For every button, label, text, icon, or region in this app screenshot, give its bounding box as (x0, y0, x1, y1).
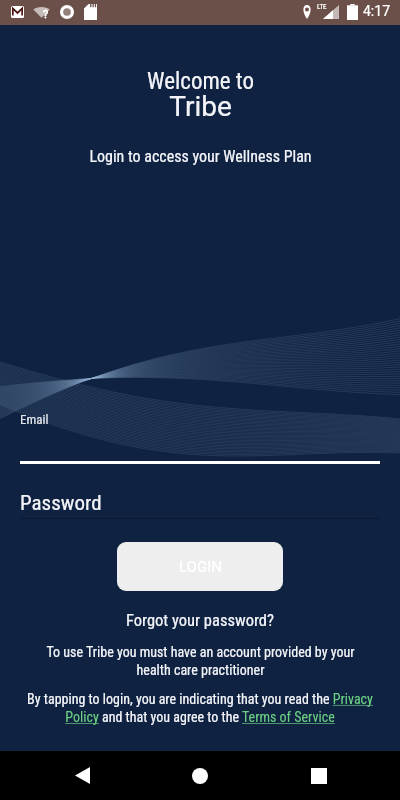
staticText: By tapping to login, you are indicating … (8, 691, 392, 726)
staticText: Tribe (169, 90, 232, 123)
button[interactable]: Forgot your password? (126, 611, 274, 630)
staticText: 4:17 (363, 3, 390, 19)
staticText: LOGIN (179, 558, 222, 576)
button[interactable]: Back (58, 751, 106, 800)
staticText: To use Tribe you must have an account pr… (46, 644, 355, 679)
button[interactable]: Home (176, 751, 224, 800)
staticText: Email (20, 412, 49, 427)
staticText: Password (20, 491, 102, 516)
staticText: Welcome to (147, 68, 254, 95)
staticText: ? (43, 8, 49, 21)
staticText: Login to access your Wellness Plan (89, 147, 312, 166)
button[interactable]: Recent apps (295, 751, 343, 800)
staticText: Forgot your password? (126, 611, 274, 630)
staticText: LTE (317, 3, 327, 11)
button[interactable]: LOGIN (117, 542, 283, 591)
